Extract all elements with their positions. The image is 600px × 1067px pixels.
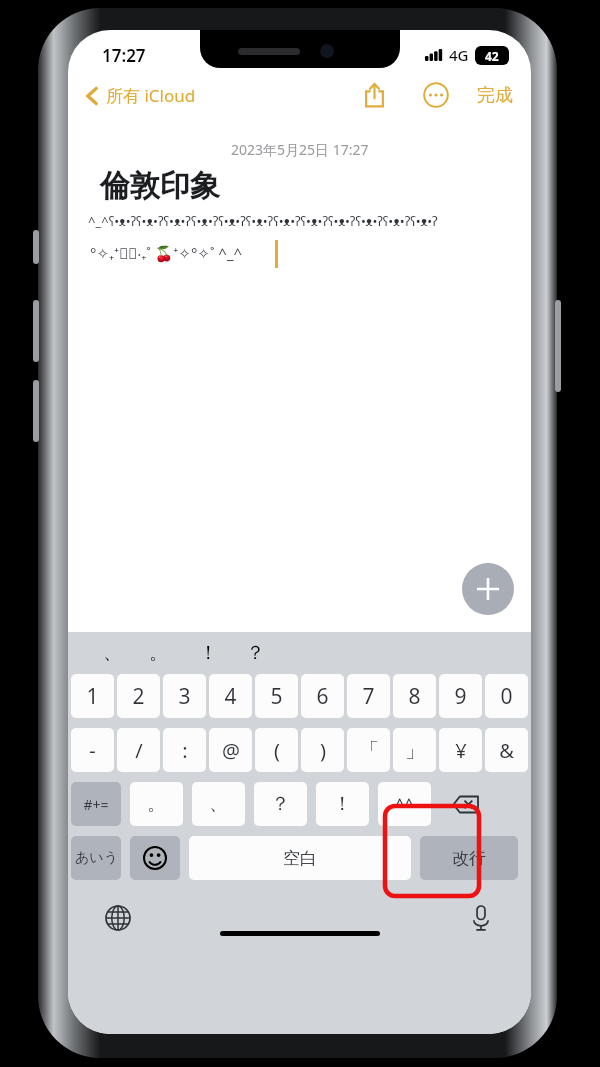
staticText: 4G — [449, 45, 469, 65]
button[interactable]: 4 — [209, 674, 252, 718]
staticText: 倫敦印象 — [100, 167, 220, 205]
button[interactable]: ！ — [316, 782, 369, 826]
button[interactable]: ？ — [233, 632, 277, 674]
button[interactable]: 8 — [393, 674, 436, 718]
staticText: & — [499, 737, 514, 764]
button[interactable]: 2 — [117, 674, 160, 718]
button[interactable]: - — [71, 728, 114, 772]
button[interactable]: 完成 — [473, 80, 517, 111]
staticText: ( — [274, 737, 280, 764]
button[interactable]: ) — [301, 728, 344, 772]
button[interactable]: 。 — [136, 632, 180, 674]
staticText: ^^ — [395, 793, 414, 815]
button[interactable]: 9 — [439, 674, 482, 718]
staticText: ¥ — [455, 737, 467, 764]
button[interactable]: ( — [255, 728, 298, 772]
button[interactable]: 3 — [163, 674, 206, 718]
staticText: 」 — [405, 738, 425, 763]
staticText: 2 — [132, 682, 145, 711]
button[interactable]: あいう — [71, 836, 121, 880]
staticText: あいう — [75, 849, 118, 867]
staticText: #+= — [83, 795, 109, 814]
staticText: / — [135, 737, 143, 764]
button[interactable]: Switch keyboard — [98, 898, 138, 938]
staticText: 5 — [270, 682, 283, 711]
staticText: ！ — [333, 792, 352, 816]
staticText: 42 — [485, 48, 499, 64]
button[interactable]: @ — [209, 728, 252, 772]
button[interactable]: 、 — [192, 782, 245, 826]
staticText: 3 — [178, 682, 191, 711]
button[interactable]: Dictation — [461, 898, 501, 938]
staticText: °✧₊⁺🍒ૢ‧₊˚ 🍒⁺✧°✧˚ ^_^ — [90, 243, 243, 263]
button[interactable]: 」 — [393, 728, 436, 772]
staticText: 4 — [224, 682, 237, 711]
button[interactable]: Delete — [440, 782, 490, 826]
staticText: 完成 — [477, 84, 513, 107]
staticText: ) — [320, 737, 326, 764]
staticText: 空白 — [283, 848, 317, 869]
button[interactable]: 改行 — [420, 836, 518, 880]
staticText: ^_^ʕ•ᴥ•ʔʕ•ᴥ•ʔʕ•ᴥ•ʔʕ•ᴥ•ʔʕ•ᴥ•ʔʕ•ᴥ•ʔʕ•ᴥ•ʔʕ•… — [88, 212, 518, 230]
staticText: ？ — [246, 641, 265, 665]
button[interactable]: Add attachment — [462, 563, 514, 615]
button[interactable]: ！ — [186, 632, 230, 674]
staticText: 1 — [86, 682, 99, 711]
staticText: 改行 — [452, 848, 486, 869]
staticText: 8 — [408, 682, 421, 711]
button[interactable]: 6 — [301, 674, 344, 718]
button[interactable]: 、 — [90, 632, 134, 674]
button[interactable]: ？ — [254, 782, 307, 826]
button[interactable]: ^^ — [378, 782, 431, 826]
staticText: 0 — [500, 682, 513, 711]
staticText: 17:27 — [102, 44, 146, 67]
staticText: 。 — [149, 641, 168, 665]
staticText: ！ — [199, 641, 218, 665]
staticText: 、 — [103, 641, 122, 665]
staticText: 9 — [454, 682, 467, 711]
staticText: @ — [222, 737, 240, 764]
staticText: - — [89, 737, 96, 764]
button[interactable]: : — [163, 728, 206, 772]
button[interactable]: 「 — [347, 728, 390, 772]
button[interactable]: 1 — [71, 674, 114, 718]
button[interactable]: Emoji — [130, 836, 180, 880]
staticText: 、 — [209, 792, 228, 816]
button[interactable]: Share — [357, 78, 391, 112]
staticText: 。 — [147, 792, 166, 816]
button[interactable]: & — [485, 728, 528, 772]
button[interactable]: 。 — [130, 782, 183, 826]
staticText: : — [182, 737, 188, 764]
button[interactable]: 0 — [485, 674, 528, 718]
button[interactable]: More options — [419, 78, 453, 112]
button[interactable]: 所有 iCloud — [80, 80, 202, 111]
staticText: 6 — [316, 682, 329, 711]
button[interactable]: / — [117, 728, 160, 772]
button[interactable]: 空白 — [189, 836, 411, 880]
button[interactable]: #+= — [71, 782, 121, 826]
staticText: 2023年5月25日 17:27 — [231, 140, 369, 159]
staticText: ？ — [271, 792, 290, 816]
staticText: 7 — [362, 682, 375, 711]
staticText: 「 — [359, 738, 379, 763]
button[interactable]: 5 — [255, 674, 298, 718]
button[interactable]: 7 — [347, 674, 390, 718]
staticText: 所有 iCloud — [106, 84, 196, 107]
button[interactable]: ¥ — [439, 728, 482, 772]
